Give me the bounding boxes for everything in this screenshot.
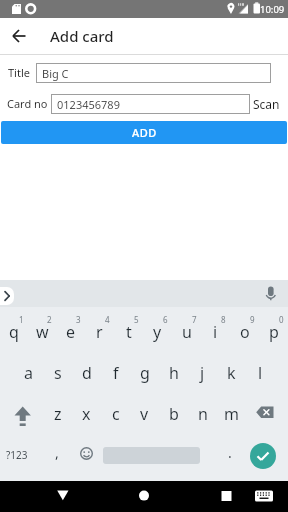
button[interactable] xyxy=(251,482,277,508)
staticText: j xyxy=(200,362,205,384)
button[interactable]: x xyxy=(72,394,101,437)
staticText: 0 xyxy=(279,314,284,325)
button[interactable]: u xyxy=(172,307,201,350)
button[interactable]: z xyxy=(43,394,72,437)
button[interactable]: p xyxy=(259,307,288,350)
button[interactable]: v xyxy=(130,394,159,437)
staticText: q xyxy=(9,321,19,343)
button[interactable]: 0123456789 xyxy=(51,94,250,114)
staticText: 5 xyxy=(134,314,139,325)
button[interactable]: o xyxy=(230,307,259,350)
button[interactable]: t xyxy=(114,307,143,350)
staticText: 2 xyxy=(47,314,52,325)
button[interactable]: s xyxy=(43,350,72,394)
staticText: n xyxy=(198,403,208,425)
staticText: 9 xyxy=(250,314,255,325)
staticText: d xyxy=(82,362,92,384)
staticText: ?123 xyxy=(6,448,28,462)
button[interactable]: r xyxy=(85,307,114,350)
button[interactable]: k xyxy=(217,350,246,394)
staticText: w xyxy=(36,321,49,343)
button[interactable]: ?123 xyxy=(0,437,34,481)
staticText: x xyxy=(82,403,91,425)
button[interactable]: g xyxy=(130,350,159,394)
staticText: i xyxy=(213,321,218,343)
button[interactable] xyxy=(0,287,14,305)
button[interactable]: l xyxy=(246,350,275,394)
staticText: ADD xyxy=(132,125,157,140)
staticText: 8 xyxy=(221,314,226,325)
button[interactable]: f xyxy=(101,350,130,394)
button[interactable]: h xyxy=(159,350,188,394)
staticText: , xyxy=(55,443,59,462)
button[interactable]: i xyxy=(201,307,230,350)
button[interactable] xyxy=(250,443,276,469)
staticText: c xyxy=(112,403,120,425)
button[interactable] xyxy=(263,286,279,302)
button[interactable]: e xyxy=(56,307,85,350)
staticText: g xyxy=(140,362,150,384)
button[interactable]: Scan xyxy=(253,96,280,112)
staticText: t xyxy=(126,321,132,343)
staticText: Add card xyxy=(50,26,114,46)
staticText: Scan xyxy=(253,96,280,112)
button[interactable] xyxy=(245,394,288,437)
button[interactable]: c xyxy=(101,394,130,437)
staticText: Card no xyxy=(7,96,48,111)
staticText: v xyxy=(140,403,149,425)
button[interactable] xyxy=(0,394,43,437)
button[interactable]: a xyxy=(14,350,43,394)
staticText: y xyxy=(153,321,162,343)
staticText: p xyxy=(269,321,279,343)
staticText: 0123456789 xyxy=(57,97,120,112)
button[interactable] xyxy=(50,482,76,508)
button[interactable] xyxy=(131,482,157,508)
button[interactable]: y xyxy=(143,307,172,350)
staticText: m xyxy=(224,403,239,425)
staticText: 4 xyxy=(105,314,110,325)
button[interactable] xyxy=(6,23,32,49)
staticText: 10:09 xyxy=(260,3,285,16)
button[interactable]: d xyxy=(72,350,101,394)
staticText: Title xyxy=(8,65,30,80)
button[interactable]: Big C xyxy=(36,63,271,83)
button[interactable] xyxy=(78,451,95,468)
staticText: . xyxy=(228,443,232,462)
staticText: l xyxy=(258,362,263,384)
staticText: z xyxy=(54,403,62,425)
button[interactable]: q xyxy=(0,307,28,350)
button[interactable] xyxy=(213,482,239,508)
staticText: u xyxy=(182,321,192,343)
button[interactable]: w xyxy=(28,307,56,350)
staticText: Big C xyxy=(42,66,69,81)
staticText: h xyxy=(169,362,179,384)
staticText: k xyxy=(227,362,236,384)
staticText: a xyxy=(24,362,33,384)
staticText: o xyxy=(240,321,250,343)
staticText: f xyxy=(113,362,119,384)
staticText: 3 xyxy=(76,314,81,325)
button[interactable]: ADD xyxy=(1,121,287,144)
staticText: 1 xyxy=(19,314,24,325)
button[interactable]: b xyxy=(159,394,188,437)
staticText: 7 xyxy=(192,314,197,325)
button[interactable]: n xyxy=(188,394,217,437)
button[interactable]: m xyxy=(217,394,246,437)
staticText: 6 xyxy=(163,314,168,325)
staticText: b xyxy=(169,403,179,425)
staticText: e xyxy=(66,321,76,343)
staticText: s xyxy=(54,362,62,384)
staticText: r xyxy=(96,321,103,343)
button[interactable]: j xyxy=(188,350,217,394)
